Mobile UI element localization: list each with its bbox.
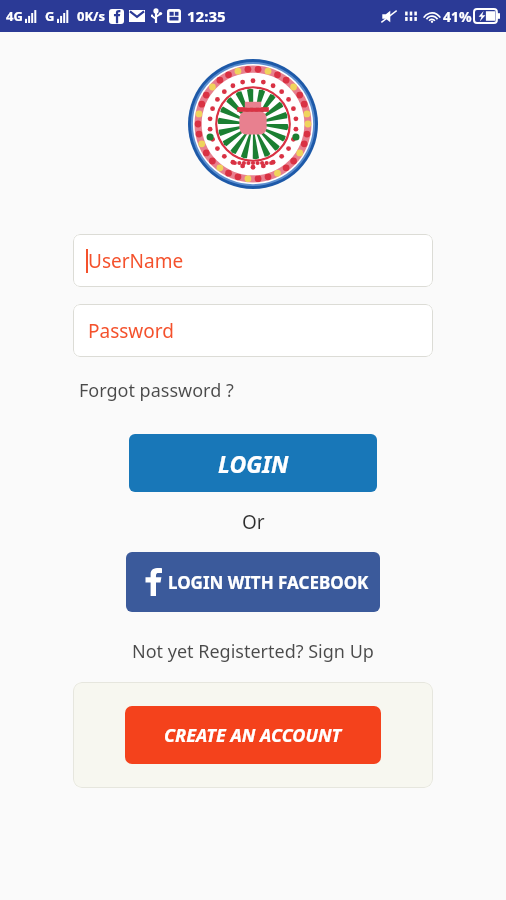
- button[interactable]: UserName: [73, 234, 433, 287]
- staticText: Or: [242, 509, 265, 535]
- button[interactable]: Password: [73, 304, 433, 357]
- button[interactable]: LOGIN WITH FACEBOOK: [126, 552, 380, 612]
- staticText: 41%: [443, 7, 472, 26]
- staticText: Password: [88, 318, 174, 344]
- button[interactable]: LOGIN: [129, 434, 377, 492]
- staticText: LOGIN: [218, 448, 289, 479]
- staticText: LOGIN WITH FACEBOOK: [168, 571, 369, 594]
- staticText: Not yet Registerted? Sign Up: [132, 639, 374, 664]
- button[interactable]: CREATE AN ACCOUNT: [125, 706, 381, 764]
- staticText: CREATE AN ACCOUNT: [164, 723, 342, 748]
- staticText: G: [45, 7, 55, 25]
- staticText: 0K/s: [77, 7, 105, 25]
- button[interactable]: Not yet Registerted? Sign Up: [132, 639, 374, 664]
- staticText: 12:35: [187, 6, 226, 26]
- staticText: UserName: [88, 248, 184, 274]
- button[interactable]: Forgot password ?: [79, 378, 234, 403]
- staticText: 4G: [6, 7, 23, 25]
- staticText: Forgot password ?: [79, 378, 234, 403]
